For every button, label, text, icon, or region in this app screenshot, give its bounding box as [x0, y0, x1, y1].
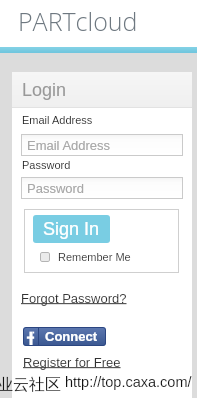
button[interactable]: PARTcloud — [18, 4, 138, 38]
button[interactable]: Register for Free — [23, 355, 121, 370]
staticText: Sign In — [43, 219, 100, 239]
staticText: http://top.caxa.com/ — [65, 374, 192, 390]
staticText: Remember Me — [58, 251, 131, 263]
staticText: Connect — [45, 329, 97, 344]
staticText: Password — [22, 159, 71, 171]
staticText: Login — [22, 80, 67, 100]
button[interactable]: Sign In — [33, 215, 110, 243]
button[interactable]: Remember Me — [40, 251, 131, 263]
staticText: 业云社区 — [0, 375, 61, 395]
button[interactable]: Connect with Facebook — [23, 327, 106, 346]
button[interactable]: Forgot Password? — [21, 291, 127, 306]
button[interactable]: Password — [21, 177, 183, 199]
staticText: Email Address — [27, 138, 111, 153]
button[interactable]: Email Address — [21, 134, 183, 156]
staticText: Password — [27, 181, 85, 196]
staticText: Email Address — [22, 114, 93, 126]
